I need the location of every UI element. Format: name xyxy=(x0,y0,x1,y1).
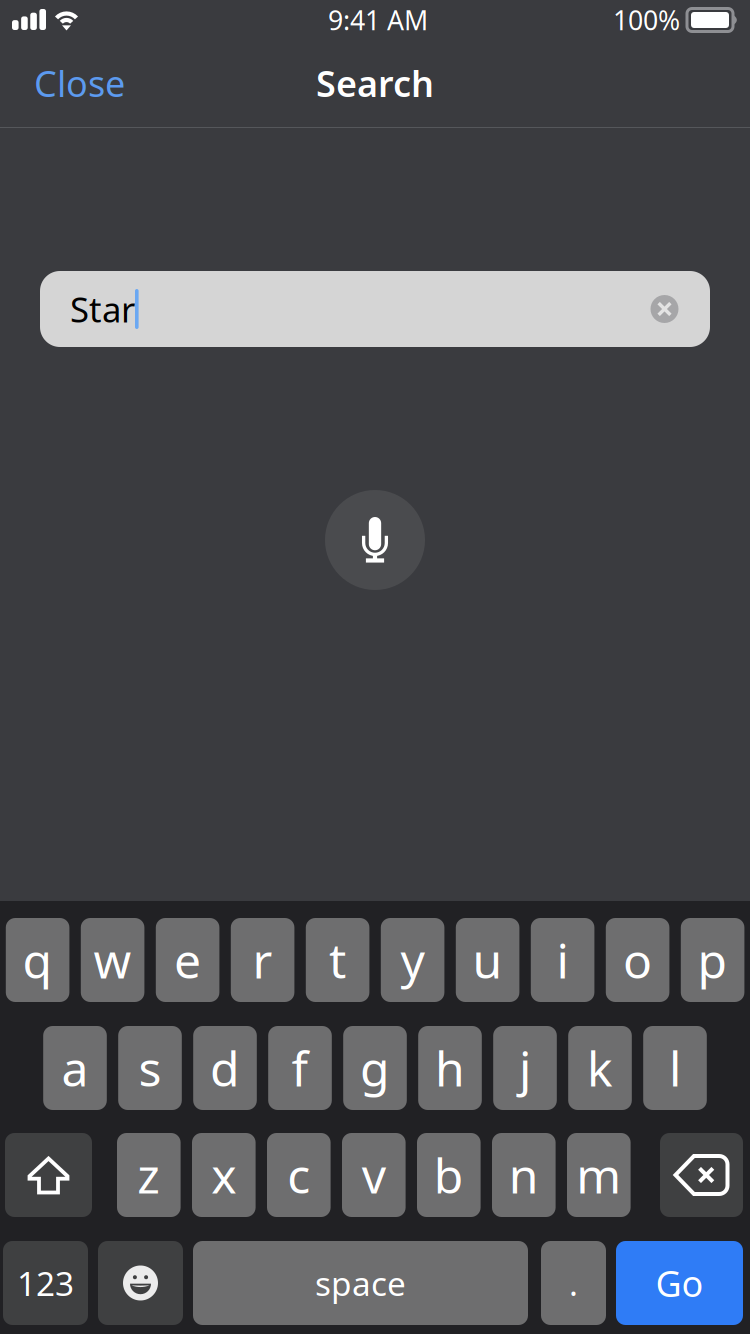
button[interactable]: k xyxy=(568,1026,632,1110)
staticText: w xyxy=(94,928,132,992)
button[interactable]: t xyxy=(306,918,369,1002)
staticText: z xyxy=(137,1143,160,1207)
staticText: l xyxy=(669,1036,681,1100)
button[interactable]: s xyxy=(118,1026,182,1110)
button[interactable]: . xyxy=(541,1241,606,1325)
staticText: Go xyxy=(655,1259,703,1307)
button[interactable]: h xyxy=(418,1026,482,1110)
staticText: i xyxy=(557,928,569,992)
button[interactable]: Emoji xyxy=(98,1241,183,1325)
button[interactable]: p xyxy=(681,918,744,1002)
button[interactable]: z xyxy=(117,1133,181,1217)
staticText: 9:41 AM xyxy=(328,2,428,38)
button[interactable]: i xyxy=(531,918,594,1002)
button[interactable]: space xyxy=(193,1241,528,1325)
staticText: g xyxy=(360,1036,390,1100)
button[interactable]: 123 xyxy=(3,1241,88,1325)
staticText: e xyxy=(174,928,201,992)
staticText: Close xyxy=(34,59,125,107)
staticText: t xyxy=(329,928,346,992)
button[interactable]: d xyxy=(193,1026,257,1110)
button[interactable]: u xyxy=(456,918,519,1002)
staticText: Star xyxy=(70,286,135,332)
button[interactable]: a xyxy=(43,1026,107,1110)
staticText: j xyxy=(519,1036,531,1100)
button[interactable]: Delete xyxy=(660,1133,743,1217)
button[interactable]: v xyxy=(342,1133,406,1217)
button[interactable]: Shift xyxy=(5,1133,92,1217)
staticText: d xyxy=(210,1036,240,1100)
staticText: a xyxy=(61,1036,88,1100)
button[interactable]: r xyxy=(231,918,294,1002)
button[interactable]: j xyxy=(493,1026,557,1110)
staticText: m xyxy=(576,1143,621,1207)
staticText: c xyxy=(287,1143,310,1207)
button[interactable]: Dictate xyxy=(325,490,425,590)
button[interactable]: x xyxy=(192,1133,256,1217)
staticText: 100% xyxy=(613,2,680,38)
button[interactable]: b xyxy=(417,1133,481,1217)
button[interactable]: w xyxy=(81,918,144,1002)
button[interactable]: g xyxy=(343,1026,407,1110)
button[interactable]: l xyxy=(643,1026,707,1110)
button[interactable]: e xyxy=(156,918,219,1002)
staticText: h xyxy=(435,1036,465,1100)
staticText: s xyxy=(138,1036,161,1100)
button[interactable]: c xyxy=(267,1133,331,1217)
staticText: . xyxy=(569,1261,578,1305)
staticText: p xyxy=(698,928,728,992)
button[interactable]: y xyxy=(381,918,444,1002)
button[interactable]: Clear text xyxy=(636,271,692,347)
staticText: 123 xyxy=(17,1261,74,1305)
staticText: n xyxy=(509,1143,539,1207)
button[interactable]: Go xyxy=(616,1241,743,1325)
staticText: q xyxy=(23,928,53,992)
staticText: o xyxy=(623,928,652,992)
staticText: k xyxy=(587,1036,613,1100)
staticText: b xyxy=(434,1143,464,1207)
button[interactable]: Close xyxy=(34,58,174,108)
button[interactable]: o xyxy=(606,918,669,1002)
staticText: y xyxy=(401,928,425,992)
staticText: x xyxy=(211,1143,236,1207)
button[interactable]: n xyxy=(492,1133,556,1217)
staticText: v xyxy=(362,1143,386,1207)
button[interactable]: f xyxy=(268,1026,332,1110)
staticText: Search xyxy=(316,59,434,107)
button[interactable]: m xyxy=(567,1133,631,1217)
staticText: u xyxy=(473,928,503,992)
staticText: r xyxy=(253,928,273,992)
button[interactable]: q xyxy=(6,918,69,1002)
staticText: f xyxy=(291,1036,308,1100)
staticText: space xyxy=(315,1261,406,1305)
